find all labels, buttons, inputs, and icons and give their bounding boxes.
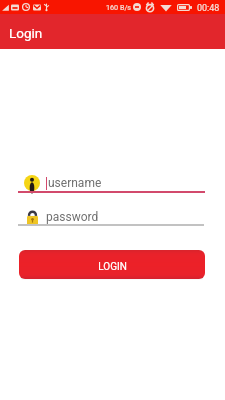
- staticText: Login: [9, 25, 43, 41]
- staticText: 160 B/s: [106, 3, 132, 11]
- staticText: username: [48, 176, 102, 190]
- staticText: password: [46, 210, 99, 224]
- staticText: LOGIN: [98, 261, 127, 273]
- other: Password: [27, 210, 38, 225]
- staticText: 00:48: [197, 3, 220, 14]
- button[interactable]: LOGIN: [19, 250, 205, 279]
- other: Username: [24, 175, 40, 191]
